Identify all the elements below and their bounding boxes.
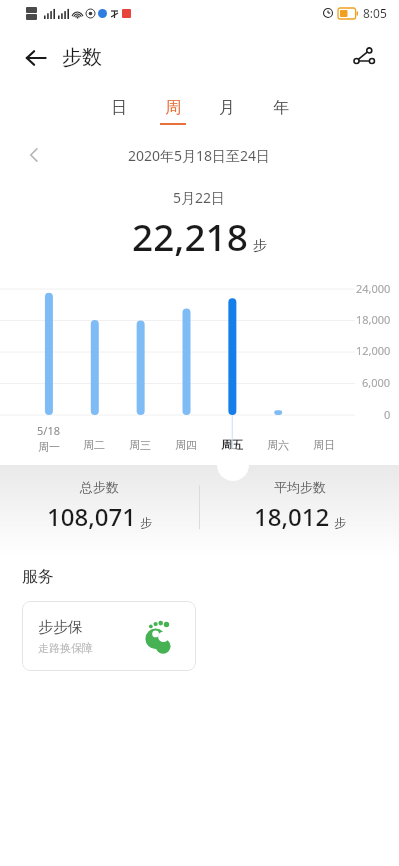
staticText: 24,000 xyxy=(356,281,391,296)
staticText: 0 xyxy=(384,407,391,422)
staticText: 18,012 xyxy=(254,500,330,533)
staticText: 周三 xyxy=(129,438,151,452)
staticText: 12,000 xyxy=(356,343,391,358)
staticText: 步 xyxy=(253,237,267,255)
button[interactable]: Share xyxy=(345,38,383,76)
staticText: 月 xyxy=(219,98,235,118)
staticText: 周五 xyxy=(221,438,243,452)
staticText: 日 xyxy=(111,98,127,118)
button[interactable]: Back xyxy=(18,39,108,76)
staticText: 5月22日 xyxy=(173,188,226,207)
button[interactable]: 步步保 xyxy=(22,601,196,671)
staticText: 108,071 xyxy=(47,500,136,533)
other: Back xyxy=(24,46,48,70)
staticText: 8:05 xyxy=(363,5,387,21)
staticText: 周日 xyxy=(313,438,335,452)
staticText: 6,000 xyxy=(362,375,391,390)
staticText: 步 xyxy=(334,515,346,530)
staticText: 年 xyxy=(273,98,289,118)
button[interactable]: 年 xyxy=(254,88,308,134)
staticText: 周四 xyxy=(175,438,197,452)
staticText: 服务 xyxy=(22,567,54,587)
staticText: 总步数 xyxy=(80,479,119,495)
button[interactable]: 月 xyxy=(200,88,254,134)
staticText: 步步保 xyxy=(38,618,83,637)
button[interactable]: 日 xyxy=(92,88,146,134)
staticText: 周 xyxy=(165,98,181,118)
staticText: 走路换保障 xyxy=(38,641,93,655)
staticText: 周二 xyxy=(83,438,105,452)
staticText: 18,000 xyxy=(356,312,391,327)
staticText: 步数 xyxy=(62,45,102,70)
staticText: 2020年5月18日至24日 xyxy=(128,146,271,165)
staticText: 平均步数 xyxy=(274,479,326,495)
staticText: 步 xyxy=(140,515,152,530)
staticText: 22,218 xyxy=(132,211,248,261)
button[interactable]: Previous week xyxy=(20,141,48,169)
staticText: 周六 xyxy=(267,438,289,452)
staticText: 5/18 xyxy=(37,423,60,438)
button[interactable]: 周 xyxy=(146,88,200,134)
staticText: 周一 xyxy=(38,440,60,454)
